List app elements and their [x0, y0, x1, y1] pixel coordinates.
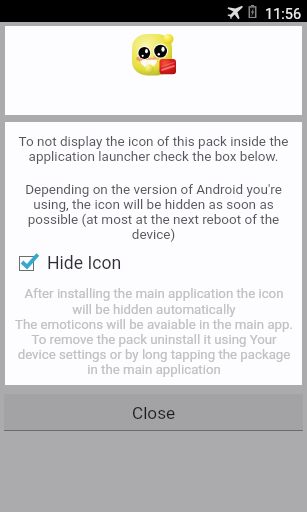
- staticText: After installing the main application th…: [15, 286, 293, 377]
- button[interactable]: Hide Icon: [5, 249, 302, 274]
- staticText: Hide Icon: [47, 253, 122, 274]
- staticText: Close: [132, 403, 176, 423]
- staticText: 11:56: [265, 6, 302, 23]
- staticText: Depending on the version of Android you'…: [19, 181, 288, 243]
- button[interactable]: Close: [4, 394, 303, 431]
- staticText: To not display the icon of this pack ins…: [13, 133, 294, 165]
